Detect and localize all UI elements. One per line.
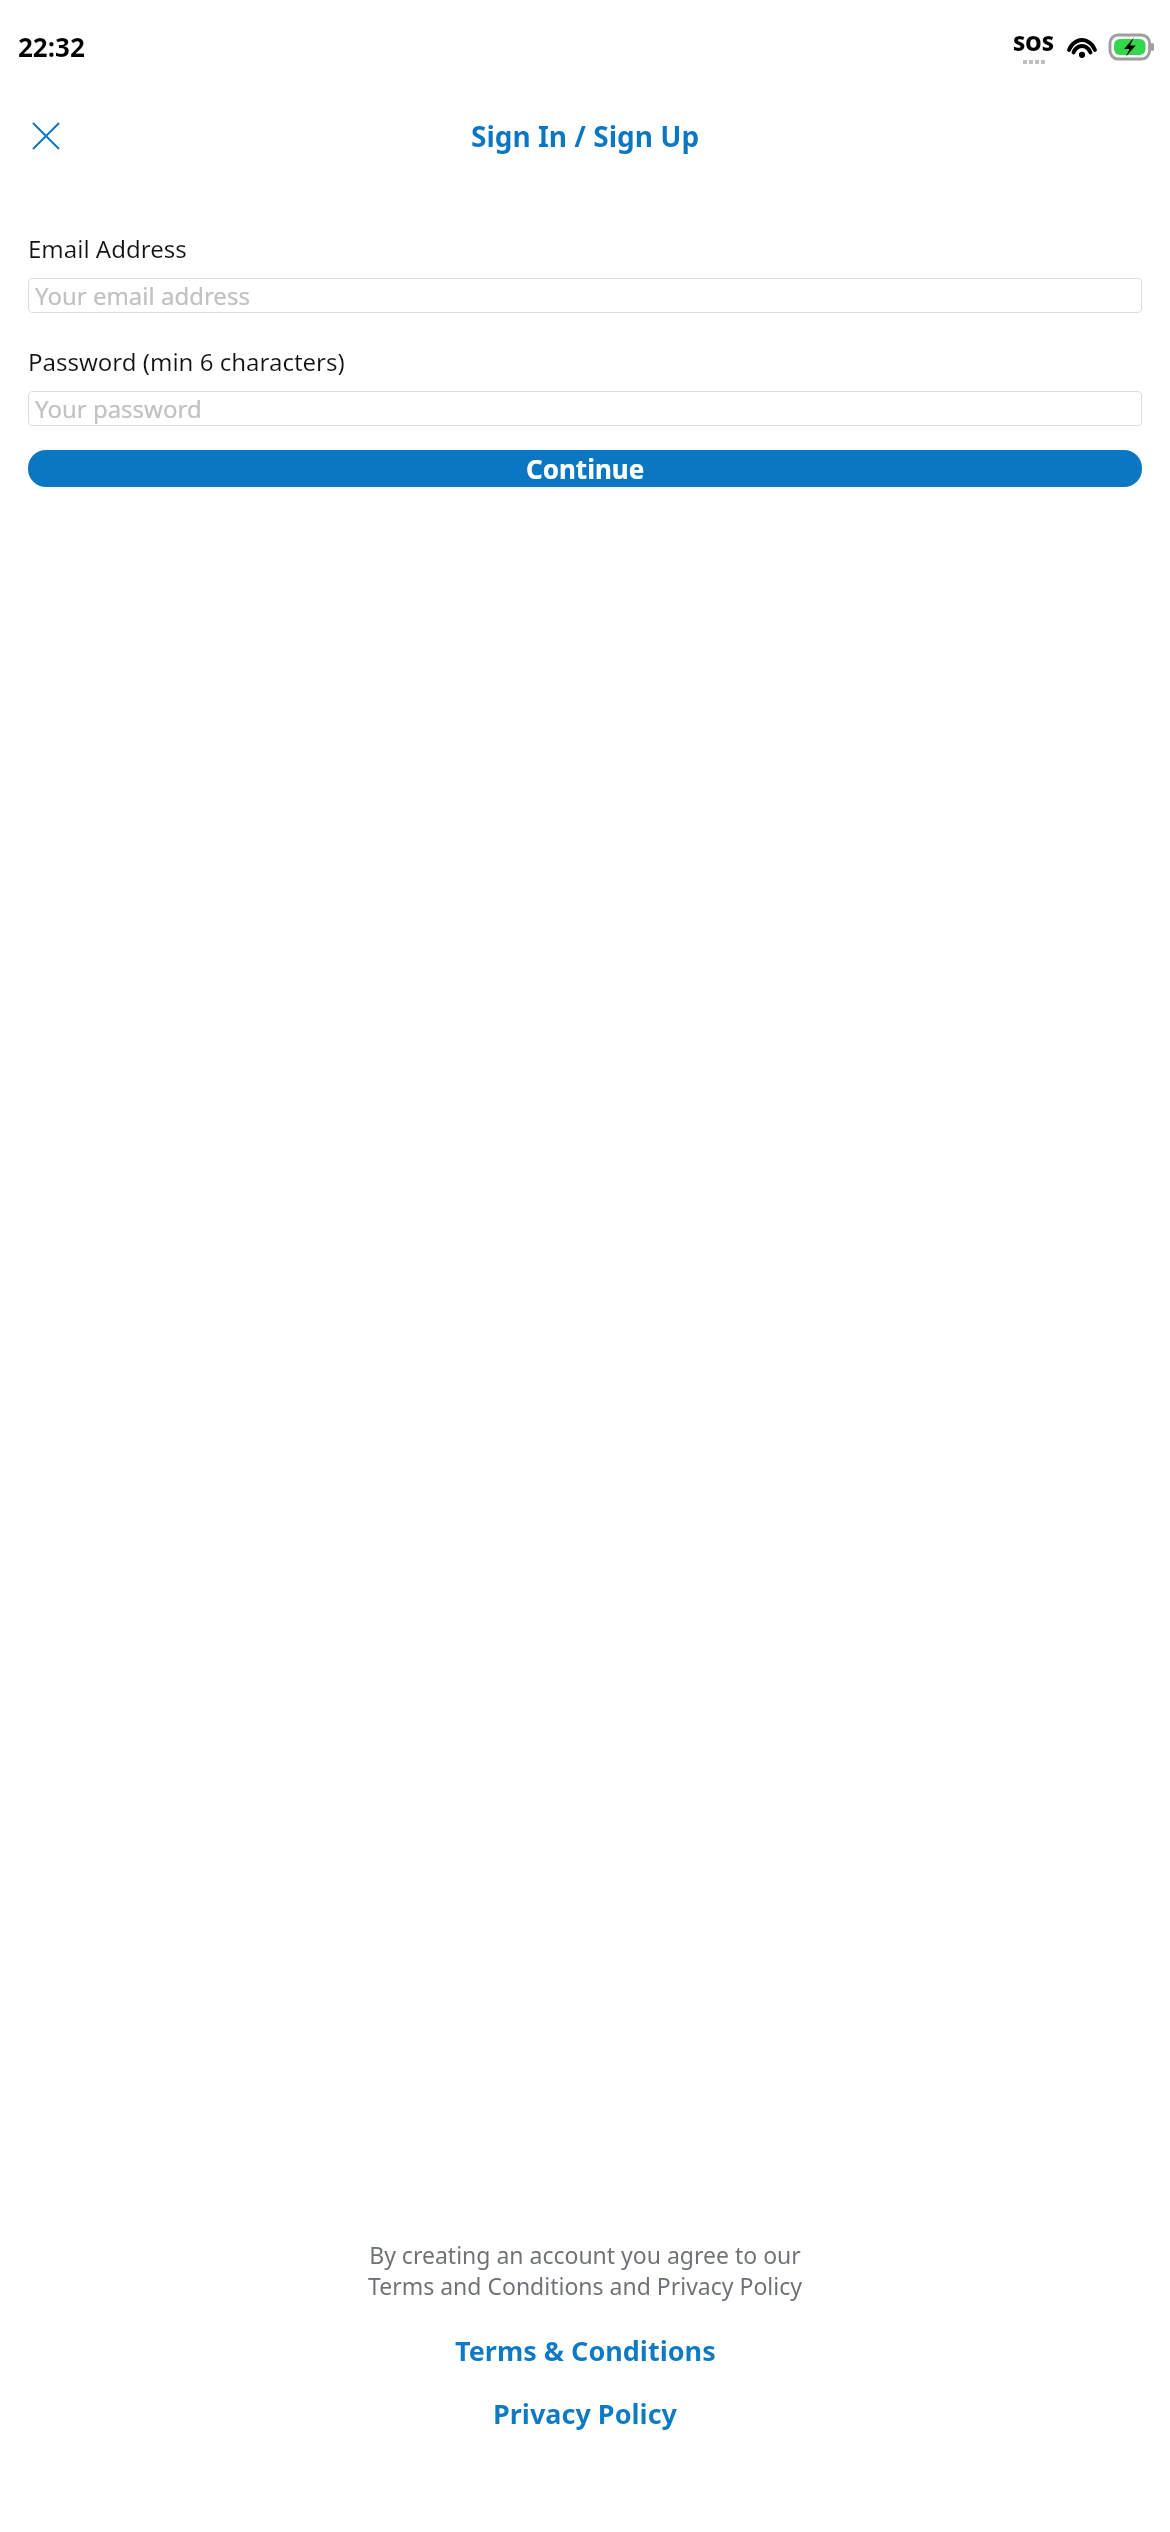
- staticText: Your email address: [35, 279, 250, 312]
- staticText: Sign In / Sign Up: [471, 117, 700, 155]
- staticText: By creating an account you agree to our …: [368, 2239, 802, 2302]
- staticText: Email Address: [28, 232, 187, 265]
- button[interactable]: Your password: [28, 391, 1142, 426]
- button[interactable]: Terms & Conditions: [443, 2324, 728, 2377]
- button[interactable]: Privacy Policy: [481, 2387, 689, 2440]
- button[interactable]: Close: [26, 116, 66, 156]
- staticText: SOS: [1013, 29, 1054, 58]
- staticText: Privacy Policy: [493, 2395, 677, 2432]
- button[interactable]: Continue: [28, 450, 1142, 487]
- staticText: Continue: [526, 451, 645, 486]
- staticText: 22:32: [18, 29, 85, 64]
- staticText: Terms & Conditions: [455, 2332, 716, 2369]
- staticText: Password (min 6 characters): [28, 345, 345, 378]
- button[interactable]: Your email address: [28, 278, 1142, 313]
- staticText: Your password: [35, 392, 202, 425]
